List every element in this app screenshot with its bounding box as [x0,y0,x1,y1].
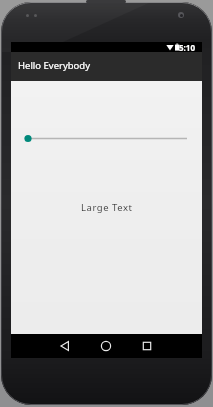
button[interactable] [97,337,115,355]
staticText: Hello Everybody [18,59,91,72]
button[interactable] [17,128,197,148]
button[interactable]: Large Text [81,201,133,214]
button[interactable] [138,337,156,355]
button[interactable] [56,337,74,355]
staticText: 5:10 [179,42,195,52]
